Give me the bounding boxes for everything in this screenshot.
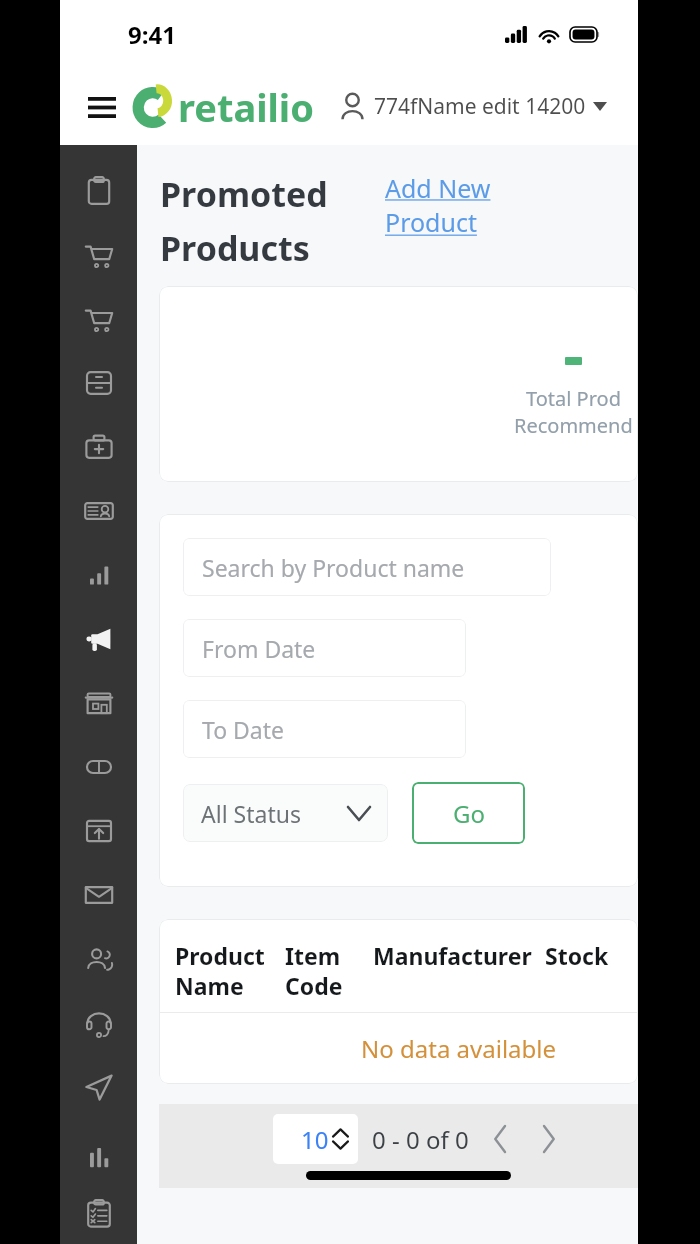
staticText: All Status	[201, 798, 301, 829]
button[interactable]: retailio	[132, 81, 314, 133]
button[interactable]: 10	[273, 1114, 358, 1164]
button[interactable]: Previous page	[483, 1122, 517, 1156]
button[interactable]: Send	[60, 1055, 137, 1119]
staticText: retailio	[178, 81, 314, 133]
button[interactable]: Upload	[60, 799, 137, 863]
staticText: 774fName edit 14200	[374, 92, 586, 121]
staticText: Add New Product	[385, 171, 491, 240]
staticText: Search by Product name	[202, 552, 465, 583]
button[interactable]: Products	[60, 735, 137, 799]
button[interactable]: Inventory	[60, 351, 137, 415]
staticText: 10	[301, 1123, 329, 1156]
button[interactable]: Tasks	[60, 1183, 137, 1244]
button[interactable]: Promotions	[60, 607, 137, 671]
staticText: Product Name	[175, 940, 271, 1002]
button[interactable]: Reports	[60, 543, 137, 607]
button[interactable]: Menu	[80, 85, 124, 129]
staticText: No data available	[361, 1032, 557, 1065]
button[interactable]: Cart	[60, 223, 137, 287]
button[interactable]: Stores	[60, 671, 137, 735]
button[interactable]: 774fName edit 14200	[340, 92, 607, 121]
staticText: Manufacturer	[373, 940, 533, 971]
button[interactable]: Purchases	[60, 287, 137, 351]
staticText: Promoted Products	[160, 171, 385, 271]
button[interactable]: Medical kit	[60, 415, 137, 479]
button[interactable]: From Date	[183, 619, 466, 677]
button[interactable]: Analytics	[60, 1119, 137, 1183]
button[interactable]: All Status	[183, 784, 388, 842]
staticText: Item Code	[285, 940, 353, 1002]
button[interactable]: Customers	[60, 927, 137, 991]
staticText: 9:41	[128, 18, 176, 51]
button[interactable]: Go	[412, 782, 525, 844]
staticText: From Date	[202, 633, 316, 664]
button[interactable]: Contacts	[60, 479, 137, 543]
button[interactable]: Add New Product	[385, 171, 491, 240]
button[interactable]: Messages	[60, 863, 137, 927]
staticText: Stock	[545, 940, 625, 971]
staticText: Go	[453, 797, 485, 830]
staticText: Recommend	[514, 412, 633, 439]
button[interactable]: Support	[60, 991, 137, 1055]
button[interactable]: Next page	[531, 1122, 565, 1156]
staticText: 0 - 0 of 0	[372, 1123, 469, 1156]
button[interactable]: Orders	[60, 159, 137, 223]
staticText: To Date	[202, 714, 285, 745]
staticText: Total Prod	[526, 385, 621, 412]
button[interactable]: To Date	[183, 700, 466, 758]
button[interactable]: Search by Product name	[183, 538, 551, 596]
